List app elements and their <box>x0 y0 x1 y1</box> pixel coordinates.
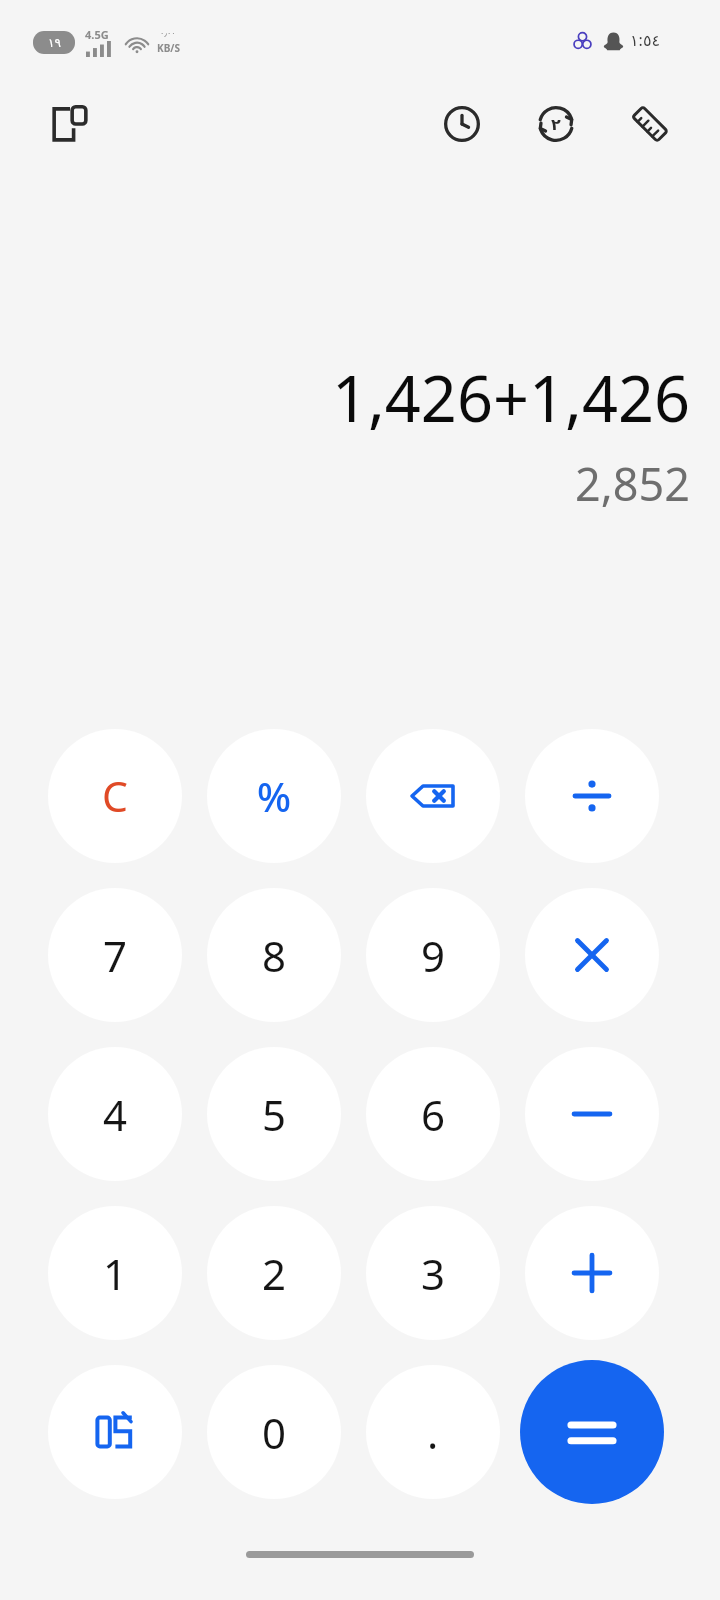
button[interactable]: Unit converter <box>618 92 682 156</box>
button[interactable]: 1 <box>48 1206 182 1340</box>
staticText: 4 <box>103 1086 128 1143</box>
button[interactable]: 6 <box>366 1047 500 1181</box>
staticText: % <box>257 769 292 823</box>
staticText: 8 <box>262 927 287 984</box>
button[interactable]: 3 <box>366 1206 500 1340</box>
staticText: 9 <box>421 927 446 984</box>
staticText: ٢ <box>551 115 561 134</box>
button[interactable]: Plus <box>525 1206 659 1340</box>
button[interactable]: 5 <box>207 1047 341 1181</box>
button[interactable]: History <box>430 92 494 156</box>
staticText: 1 <box>103 1245 128 1302</box>
button[interactable]: 7 <box>48 888 182 1022</box>
button[interactable]: Divide <box>525 729 659 863</box>
staticText: 2 <box>262 1245 287 1302</box>
button[interactable]: 9 <box>366 888 500 1022</box>
staticText: C <box>102 768 128 824</box>
staticText: 2,852 <box>0 453 690 514</box>
staticText: 1,426+1,426 <box>0 355 690 441</box>
staticText: 7 <box>103 927 128 984</box>
button[interactable]: 4 <box>48 1047 182 1181</box>
staticText: KB/S <box>157 41 180 55</box>
staticText: 4.5G <box>85 27 109 42</box>
button[interactable]: Currency converter <box>524 92 588 156</box>
staticText: 0 <box>262 1404 287 1461</box>
button[interactable]: Equals <box>520 1360 664 1504</box>
staticText: ٠٫٠٠ <box>160 29 176 38</box>
button[interactable]: 8 <box>207 888 341 1022</box>
button[interactable]: Clear <box>48 729 182 863</box>
staticText: ١:٥٤ <box>630 29 661 51</box>
staticText: 3 <box>421 1245 446 1302</box>
button[interactable]: 0 <box>207 1365 341 1499</box>
staticText: 5 <box>262 1086 287 1143</box>
button[interactable]: Multiply <box>525 888 659 1022</box>
button[interactable]: Scientific mode <box>48 1365 182 1499</box>
staticText: . <box>427 1404 439 1461</box>
button[interactable]: . <box>366 1365 500 1499</box>
staticText: ١٩ <box>48 36 61 50</box>
button[interactable]: Minus <box>525 1047 659 1181</box>
button[interactable]: Backspace <box>366 729 500 863</box>
staticText: 6 <box>421 1086 446 1143</box>
button[interactable]: Split screen <box>38 92 102 156</box>
button[interactable]: 2 <box>207 1206 341 1340</box>
button[interactable]: Percent <box>207 729 341 863</box>
